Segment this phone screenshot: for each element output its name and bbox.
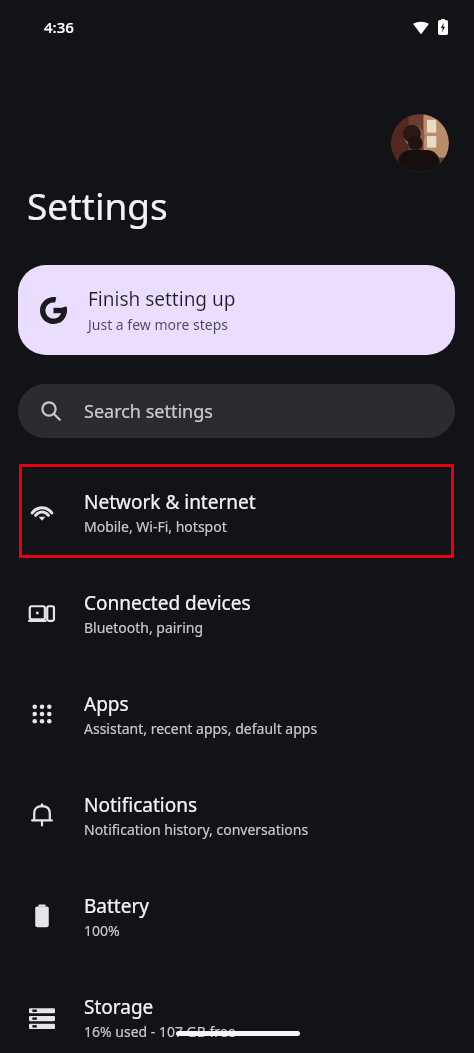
button[interactable]: Network & internet bbox=[0, 476, 474, 548]
staticText: Settings bbox=[27, 180, 168, 230]
staticText: 4:36 bbox=[44, 17, 74, 37]
button[interactable]: Apps bbox=[0, 678, 474, 750]
staticText: Finish setting up bbox=[88, 286, 236, 312]
staticText: Mobile, Wi-Fi, hotspot bbox=[84, 517, 227, 536]
button[interactable]: Storage bbox=[0, 981, 474, 1053]
staticText: Connected devices bbox=[84, 590, 251, 616]
staticText: Just a few more steps bbox=[88, 315, 229, 334]
button[interactable]: Account profile bbox=[391, 114, 449, 172]
staticText: 100% bbox=[84, 921, 120, 940]
button[interactable]: Notifications bbox=[0, 779, 474, 851]
staticText: Battery bbox=[84, 893, 149, 919]
staticText: 16% used - 107 GB free bbox=[84, 1022, 236, 1041]
staticText: Apps bbox=[84, 691, 129, 717]
staticText: Search settings bbox=[84, 399, 213, 424]
staticText: Assistant, recent apps, default apps bbox=[84, 719, 318, 738]
staticText: Bluetooth, pairing bbox=[84, 618, 204, 637]
staticText: Storage bbox=[84, 994, 154, 1020]
button[interactable]: Search settings bbox=[18, 384, 455, 438]
button[interactable]: Battery bbox=[0, 880, 474, 952]
button[interactable]: Finish setting up bbox=[18, 265, 455, 355]
staticText: Notification history, conversations bbox=[84, 820, 309, 839]
staticText: Notifications bbox=[84, 792, 198, 818]
button[interactable]: Connected devices bbox=[0, 577, 474, 649]
staticText: Network & internet bbox=[84, 489, 256, 515]
